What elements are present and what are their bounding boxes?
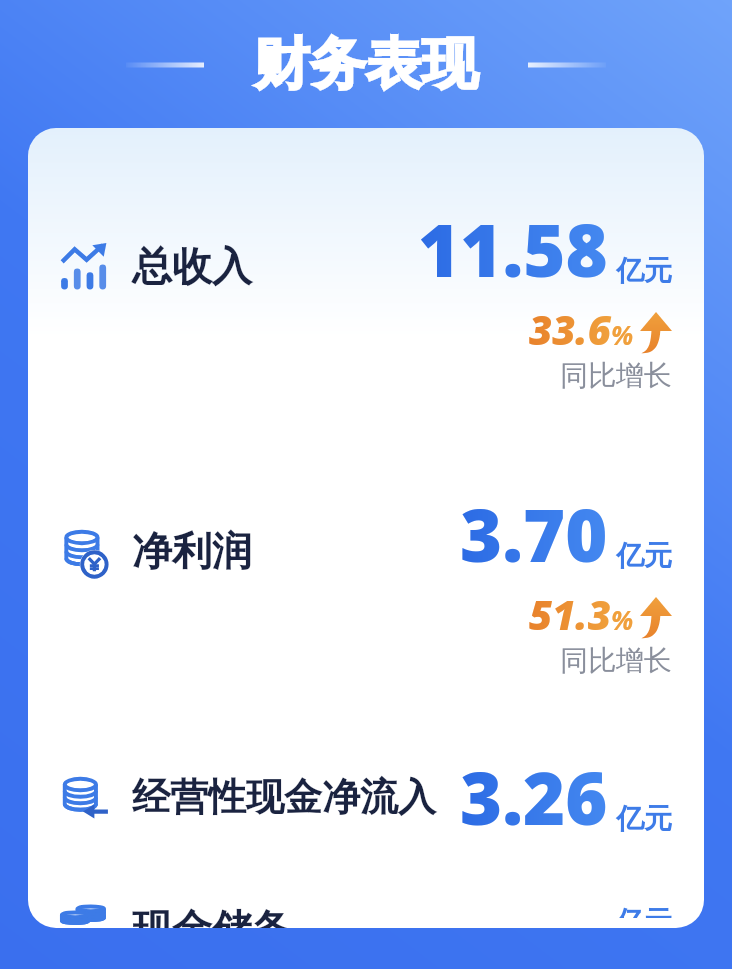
other: Net profit: [58, 525, 110, 577]
staticText: 11.58: [418, 200, 608, 298]
other: Total revenue chart: [58, 240, 110, 292]
staticText: 51.3: [529, 587, 611, 641]
staticText: 总收入: [132, 241, 252, 291]
staticText: 3.70: [460, 485, 608, 583]
other: Growth up: [638, 597, 672, 639]
staticText: 亿元: [616, 253, 672, 288]
other: Growth up: [638, 312, 672, 354]
staticText: 同比增长: [560, 358, 672, 393]
staticText: 亿元: [616, 904, 672, 918]
button[interactable]: Net profit: [28, 485, 704, 678]
staticText: 财务表现: [254, 29, 478, 100]
staticText: 3.26: [460, 748, 608, 846]
staticText: 净利润: [132, 526, 252, 576]
staticText: 33.6: [529, 302, 611, 356]
other: Cash reserves: [58, 904, 110, 928]
staticText: 经营性现金净流入: [132, 773, 436, 821]
button[interactable]: Operating cash inflow: [28, 748, 704, 846]
staticText: 现金储备: [132, 904, 292, 928]
button[interactable]: Cash reserves: [28, 904, 704, 928]
staticText: 亿元: [616, 801, 672, 836]
button[interactable]: Total revenue chart: [28, 200, 704, 393]
staticText: 同比增长: [560, 643, 672, 678]
staticText: 亿元: [616, 538, 672, 573]
other: Operating cash inflow: [58, 771, 110, 823]
staticText: %: [611, 602, 634, 637]
staticText: %: [611, 317, 634, 352]
